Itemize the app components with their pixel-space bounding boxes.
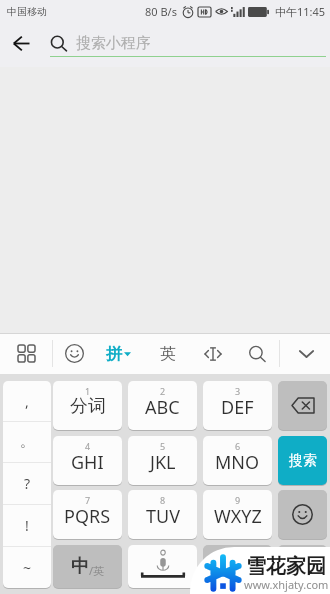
staticText: DEF [221,395,254,420]
button[interactable]: ! [3,505,51,546]
staticText: 中国移动 [7,5,47,18]
button[interactable]: Hide keyboard [290,337,323,370]
button[interactable]: Back [4,26,38,60]
staticText: www.xhjaty.com [244,577,329,592]
staticText: WXYZ [214,504,262,529]
staticText: 5 [160,440,166,452]
staticText: 。 [20,433,34,451]
button[interactable]: 7 [53,490,122,539]
staticText: ! [25,516,29,535]
staticText: , [25,392,29,411]
button[interactable]: 3 [203,381,272,430]
button[interactable]: 9 [203,490,272,539]
staticText: PQRS [64,504,111,529]
button[interactable]: 5 [128,436,197,485]
button[interactable]: Symbols [203,545,272,588]
staticText: 7 [85,494,91,506]
staticText: 9 [235,494,241,506]
staticText: 拼 [106,344,122,364]
button[interactable]: 2 [128,381,197,430]
button[interactable]: Enter [278,545,327,588]
button[interactable]: 搜索 [278,436,327,485]
button[interactable]: 4 [53,436,122,485]
button[interactable]: 8 [128,490,197,539]
staticText: 中午11:45 [275,4,326,19]
staticText: 搜索小程序 [76,34,151,53]
staticText: JKL [150,450,176,475]
staticText: 6 [235,440,241,452]
staticText: 雪花家园 [246,554,326,579]
staticText: ? [24,474,31,493]
button[interactable]: 搜索小程序 [50,22,330,64]
button[interactable]: 。 [3,422,51,462]
button[interactable]: Emoji [58,337,91,370]
button[interactable]: 1 [53,381,122,430]
button[interactable]: , [3,381,51,421]
button[interactable]: Emoji [278,490,327,539]
button[interactable]: Move cursor [196,337,229,370]
button[interactable]: 中 [53,545,122,588]
button[interactable]: Keyboard modes [10,337,43,370]
staticText: 8 [160,494,166,506]
button[interactable]: ? [3,463,51,504]
staticText: 3 [235,385,241,397]
staticText: 英 [160,344,176,364]
staticText: 搜索 [289,452,317,470]
staticText: 分词 [70,395,106,418]
button[interactable]: Backspace [278,381,327,430]
staticText: /英 [89,563,105,578]
staticText: 4 [85,440,91,452]
staticText: 中 [71,555,89,578]
staticText: MNO [215,450,260,475]
button[interactable]: 英 [151,337,184,370]
button[interactable]: Search [240,337,273,370]
button[interactable]: ~ [3,547,51,588]
staticText: TUV [146,504,180,529]
staticText: 80 B/s [145,4,177,19]
staticText: ~ [23,558,32,577]
staticText: GHI [71,450,104,475]
button[interactable]: 拼 [106,337,144,370]
staticText: 2 [160,385,166,397]
staticText: 1 [85,385,91,397]
staticText: ABC [145,395,180,420]
button[interactable]: 6 [203,436,272,485]
button[interactable]: Space [128,545,197,588]
